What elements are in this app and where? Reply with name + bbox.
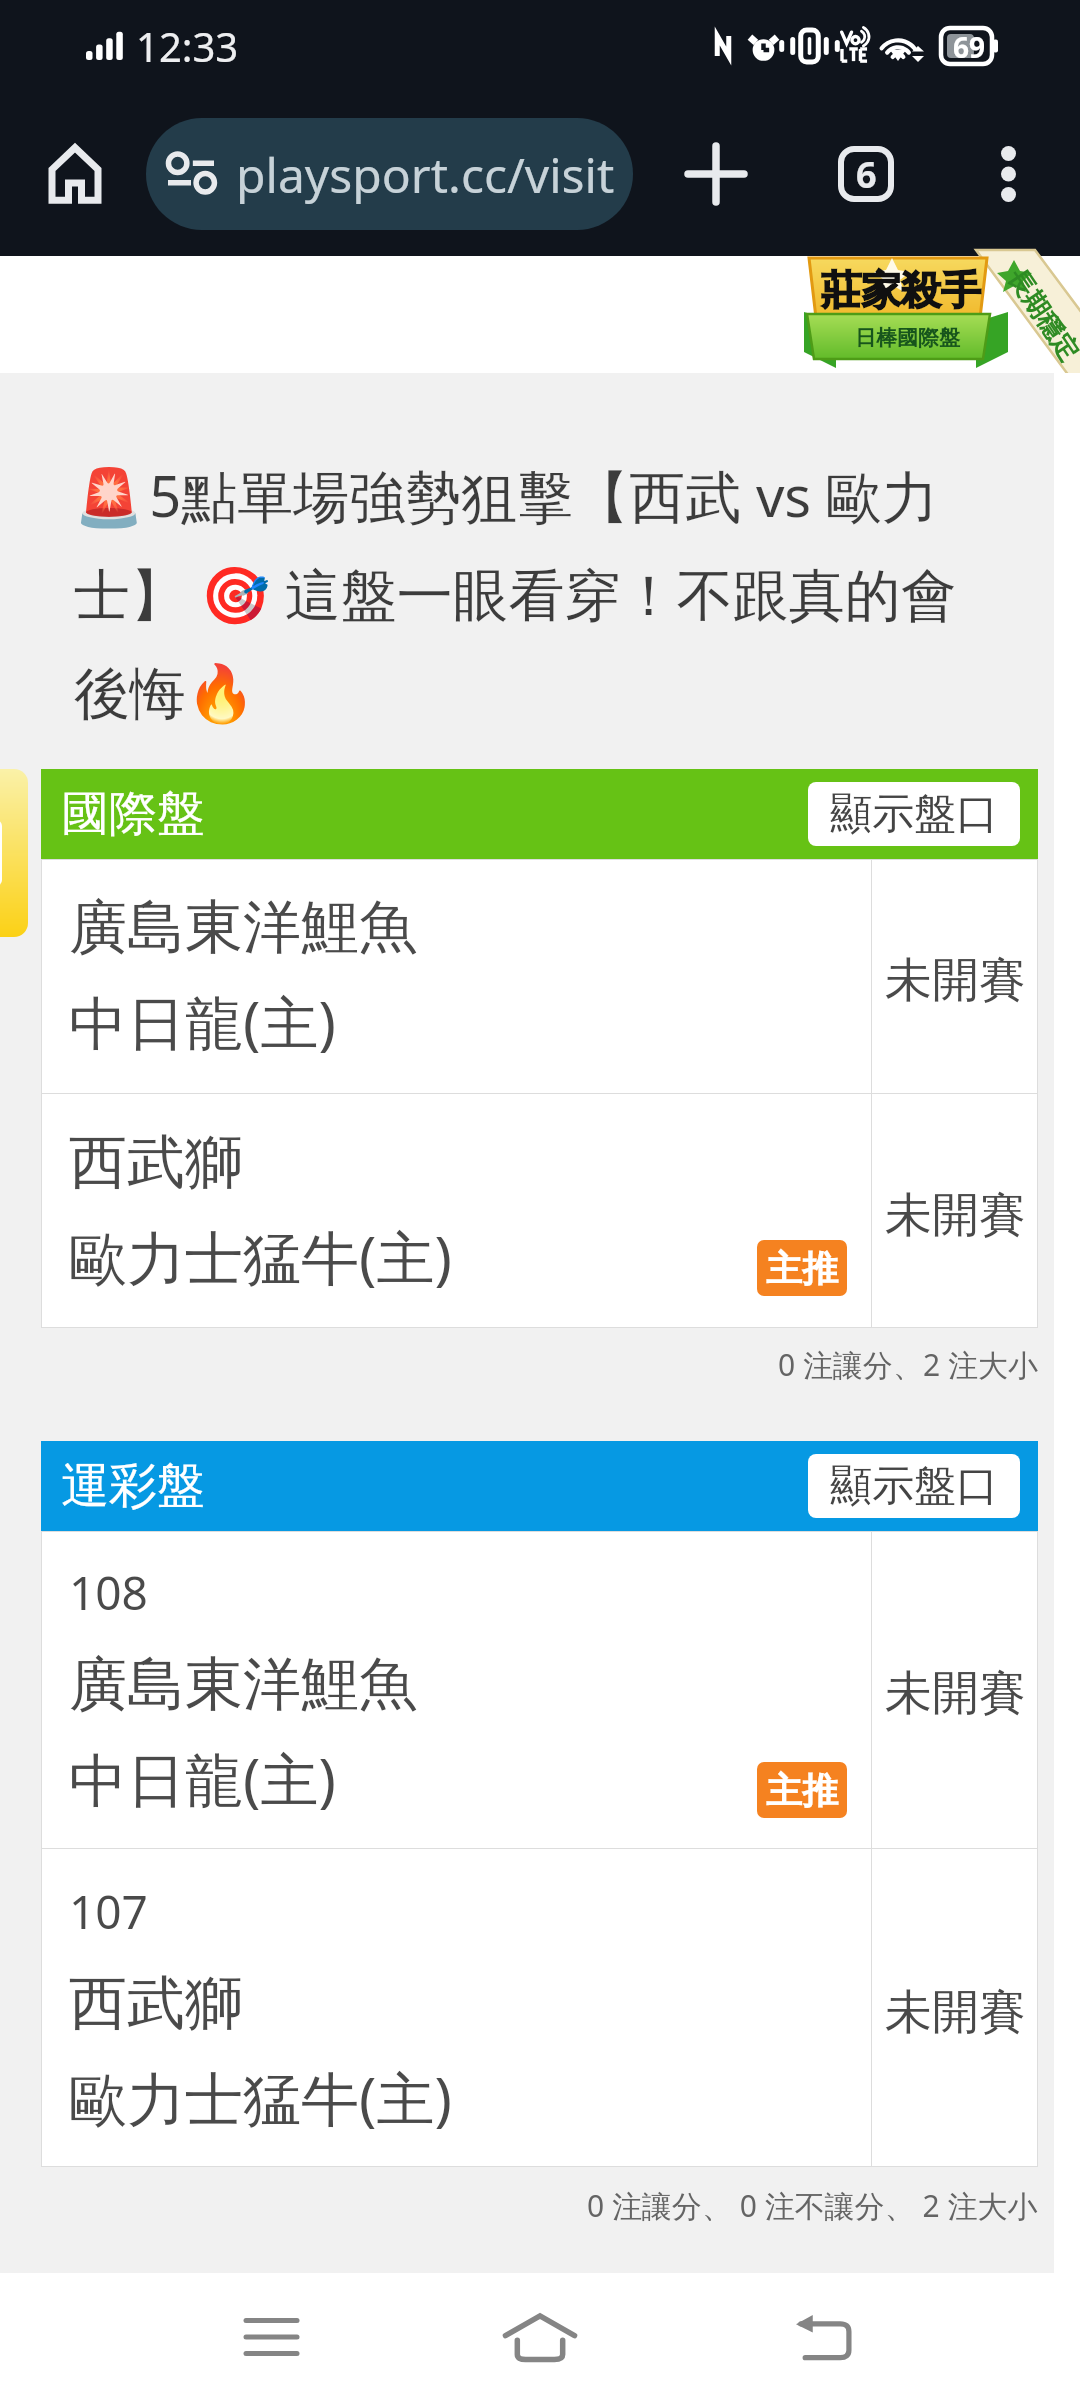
button[interactable]: 顯示盤口 xyxy=(808,1454,1020,1518)
staticText: 0 注讓分、2 注大小 xyxy=(778,1344,1038,1385)
staticText: 🚨 5點單場強勢狙擊【西武 vs 歐力士】 🎯 這盤一眼看穿！不跟真的會後悔🔥 xyxy=(74,457,994,730)
staticText: 顯示盤口 xyxy=(830,1460,998,1513)
button[interactable]: 西武獅 xyxy=(41,1094,1038,1328)
staticText: 廣島東洋鯉魚 xyxy=(69,891,417,964)
button[interactable]: 108 xyxy=(41,1531,1038,1848)
staticText: 長期穩定 xyxy=(1000,263,1080,368)
button[interactable]: Tabs xyxy=(820,128,912,220)
staticText: 69 xyxy=(953,28,986,64)
button[interactable]: 運彩盤 xyxy=(41,1441,1038,1531)
staticText: 6 xyxy=(856,150,877,199)
staticText: 主推 xyxy=(766,1768,838,1813)
button[interactable]: More options xyxy=(962,128,1054,220)
button[interactable]: 顯示盤口 xyxy=(808,782,1020,846)
staticText: 廣島東洋鯉魚 xyxy=(69,1648,417,1721)
button[interactable]: Home xyxy=(30,129,120,219)
staticText: 運彩盤 xyxy=(61,1456,205,1516)
button[interactable]: Promotion tab xyxy=(0,769,28,937)
staticText: 未開賽 xyxy=(885,1983,1026,2042)
button[interactable]: 廣島東洋鯉魚 xyxy=(41,859,1038,1093)
button[interactable]: 國際盤 xyxy=(41,769,1038,859)
staticText: 中日龍(主) xyxy=(69,1739,336,1818)
staticText: playsport.cc/visit xyxy=(236,142,615,207)
staticText: 西武獅 xyxy=(69,1126,243,1199)
staticText: 未開賽 xyxy=(885,1186,1026,1245)
button[interactable]: 107 xyxy=(41,1849,1038,2167)
staticText: 歐力士猛牛(主) xyxy=(69,1217,452,1296)
staticText: 顯示盤口 xyxy=(830,788,998,841)
staticText: 主推 xyxy=(766,1246,838,1291)
staticText: 莊家殺手 xyxy=(821,265,981,315)
staticText: 日棒國際盤 xyxy=(855,325,960,351)
button[interactable]: Back xyxy=(748,2285,898,2389)
button[interactable]: Home xyxy=(465,2285,615,2389)
staticText: 0 注讓分、 0 注不讓分、 2 注大小 xyxy=(587,2185,1038,2226)
button[interactable]: Recent apps xyxy=(196,2285,346,2389)
staticText: 中日龍(主) xyxy=(69,982,336,1061)
staticText: 12:33 xyxy=(136,19,239,73)
staticText: 未開賽 xyxy=(885,951,1026,1010)
button[interactable]: playsport.cc/visit xyxy=(146,118,633,230)
staticText: 未開賽 xyxy=(885,1664,1026,1723)
staticText: 107 xyxy=(69,1880,148,1943)
staticText: 國際盤 xyxy=(61,784,205,844)
button[interactable]: New tab xyxy=(670,128,762,220)
staticText: 西武獅 xyxy=(69,1967,243,2040)
staticText: 歐力士猛牛(主) xyxy=(69,2058,452,2137)
staticText: 108 xyxy=(69,1561,148,1624)
